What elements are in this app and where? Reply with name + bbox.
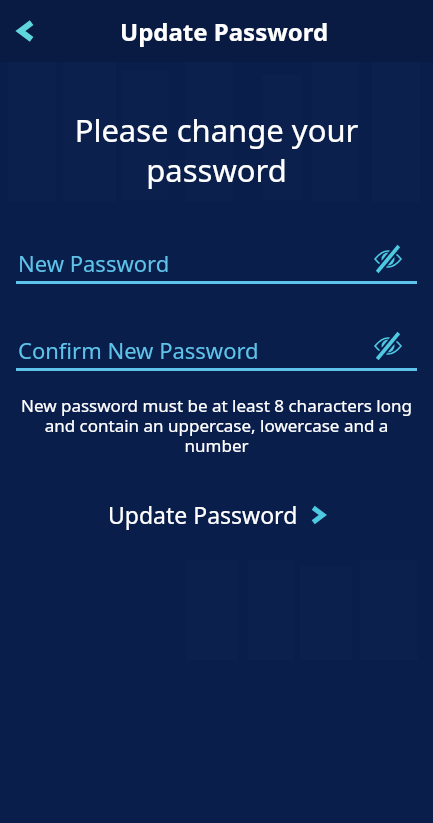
staticText: Confirm New Password <box>18 335 371 365</box>
button[interactable] <box>371 329 405 363</box>
button[interactable] <box>371 242 405 276</box>
button[interactable] <box>6 11 46 51</box>
staticText: New password must be at least 8 characte… <box>0 394 433 457</box>
staticText: New Password <box>18 248 371 278</box>
staticText: Update Password <box>120 15 329 48</box>
staticText: Please change your password <box>0 109 433 191</box>
staticText: Update Password <box>108 499 298 530</box>
button[interactable]: Update Password <box>100 491 334 538</box>
